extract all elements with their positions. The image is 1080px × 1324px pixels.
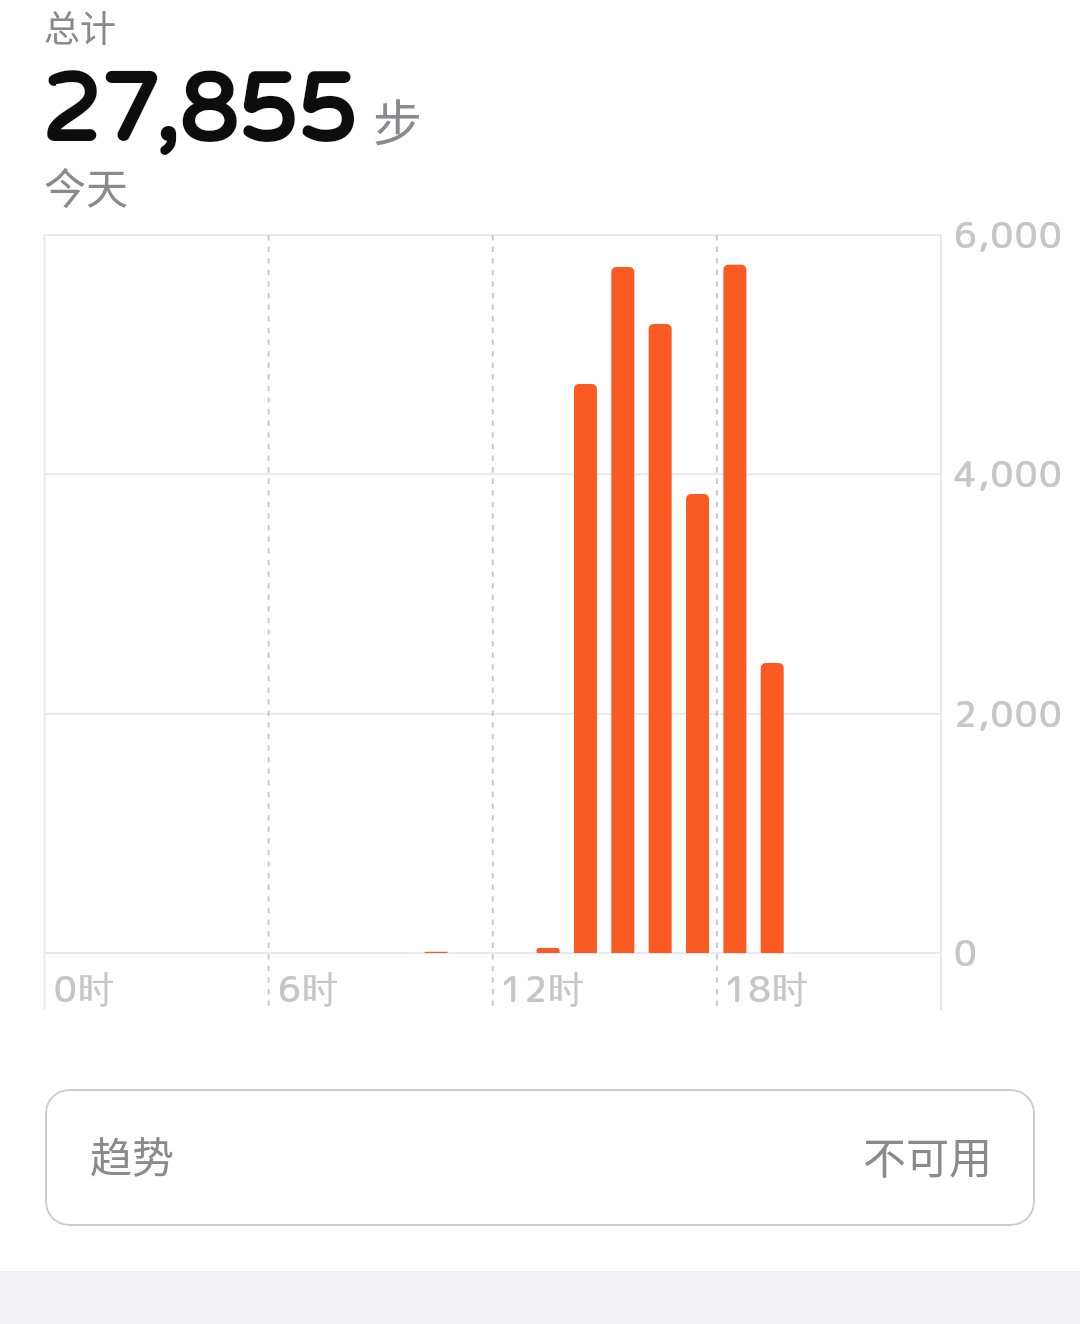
staticText: 总计 — [44, 0, 117, 52]
staticText: 0 — [954, 927, 979, 977]
staticText: 18时 — [724, 963, 810, 1013]
staticText: 6时 — [278, 963, 340, 1013]
staticText: 4,000 — [954, 448, 1064, 498]
staticText: 12时 — [500, 963, 586, 1013]
staticText: 27,855 — [41, 55, 356, 168]
staticText: 0时 — [54, 963, 116, 1013]
staticText: 今天 — [44, 155, 129, 216]
staticText: 步 — [373, 84, 423, 155]
staticText: 不可用 — [863, 1124, 992, 1186]
staticText: 2,000 — [954, 688, 1064, 738]
staticText: 趋势 — [90, 1124, 175, 1185]
staticText: 6,000 — [954, 209, 1064, 259]
button[interactable]: 趋势 — [45, 1089, 1035, 1226]
